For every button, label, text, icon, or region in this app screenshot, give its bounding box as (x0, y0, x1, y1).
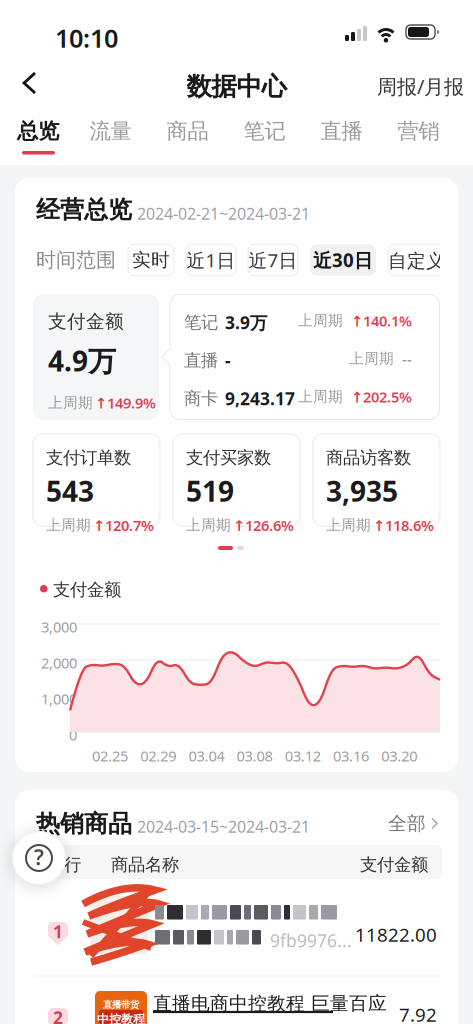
staticText: ↑140.1% (351, 311, 412, 330)
staticText: 上周期 (186, 516, 231, 534)
staticText: - (225, 349, 231, 372)
staticText: 03.08 (237, 746, 273, 765)
staticText: 11822.00 (355, 922, 437, 947)
button[interactable]: 支付金额 (33, 294, 159, 420)
staticText: ↑126.6% (233, 515, 294, 535)
staticText: 中控教程 (97, 1012, 145, 1024)
staticText: 03.12 (285, 746, 321, 765)
staticText: 近30日 (313, 248, 373, 272)
button[interactable]: 帮助 (12, 831, 66, 885)
button[interactable]: 全部 (388, 812, 439, 835)
staticText: 支付买家数 (186, 447, 271, 468)
staticText: 笔记 (184, 312, 218, 333)
button[interactable]: 自定义日期 (388, 244, 473, 276)
staticText: 支付金额 (53, 579, 121, 600)
button[interactable]: 总览 (4, 118, 72, 144)
staticText: 1 (53, 920, 63, 943)
staticText: 支付金额 (360, 854, 428, 875)
staticText: 经营总览 (36, 195, 132, 224)
button[interactable]: 支付买家数 (173, 434, 300, 526)
staticText: 上周期 (298, 312, 343, 330)
staticText: 上周期 (349, 350, 394, 368)
button[interactable]: 商品访客数 (313, 434, 440, 526)
staticText: 03.20 (381, 746, 417, 765)
staticText: 0 (69, 725, 77, 744)
staticText: 营销 (397, 118, 439, 144)
button[interactable]: 支付订单数 (33, 434, 160, 526)
staticText: -- (402, 349, 412, 368)
staticText: 02.29 (140, 746, 176, 765)
button[interactable]: 商品 (149, 118, 226, 144)
staticText: 上周期 (46, 516, 91, 534)
staticText: 排行 (47, 854, 81, 875)
staticText: ↑120.7% (93, 515, 154, 535)
staticText: 时间范围 (36, 248, 116, 272)
staticText: 上周期 (298, 388, 343, 406)
staticText: 周报/月报 (377, 73, 464, 100)
staticText: ↑202.5% (351, 387, 412, 406)
staticText: 9,243.17 (225, 387, 295, 410)
button[interactable]: 近30日 (310, 244, 376, 276)
staticText: 全部 (388, 812, 426, 835)
staticText: 1,000 (41, 689, 77, 708)
staticText: 直播 (320, 118, 362, 144)
staticText: 商品访客数 (326, 447, 411, 468)
button[interactable]: 流量 (72, 118, 149, 144)
staticText: 数据中心 (186, 71, 286, 102)
staticText: 自定义日期 (388, 248, 473, 272)
button[interactable]: 2 (15, 977, 458, 1024)
staticText: 实时 (132, 248, 170, 271)
button[interactable]: Back (14, 63, 47, 103)
staticText: 近7日 (248, 248, 297, 272)
staticText: 03.04 (188, 746, 224, 765)
staticText: 直播 (184, 350, 218, 371)
staticText: 流量 (89, 118, 131, 144)
staticText: 商品名称 (111, 854, 179, 875)
staticText: 2,000 (41, 653, 77, 672)
staticText: 笔记 (243, 118, 285, 144)
staticText: 7.92 (399, 1002, 437, 1024)
staticText: 543 (46, 472, 94, 509)
staticText: ? (34, 843, 44, 871)
staticText: 上周期 (326, 516, 371, 534)
staticText: 2024-02-21~2024-03-21 (137, 203, 310, 224)
staticText: 直播带货 (103, 999, 139, 1010)
staticText: 支付订单数 (46, 447, 131, 468)
button[interactable]: 营销 (380, 118, 457, 144)
staticText: 3,000 (41, 617, 77, 636)
staticText: 近1日 (186, 248, 235, 272)
staticText: 02.25 (92, 746, 128, 765)
staticText: 4.9万 (48, 342, 116, 379)
staticText: ↑149.9% (95, 393, 156, 413)
staticText: 519 (186, 472, 234, 509)
staticText: ↑118.6% (373, 515, 434, 535)
staticText: 商品 (166, 118, 208, 144)
staticText: 上周期 (48, 394, 93, 412)
staticText: 热销商品 (36, 809, 132, 838)
button[interactable]: 1 (15, 880, 458, 976)
staticText: 2024-03-15~2024-03-21 (137, 816, 310, 837)
staticText: 3.9万 (225, 311, 267, 334)
button[interactable]: 笔记 (226, 118, 303, 144)
button[interactable]: 近7日 (248, 244, 298, 276)
staticText: 10:10 (55, 21, 118, 55)
staticText: 商卡 (184, 388, 218, 409)
staticText: 总览 (17, 118, 59, 144)
staticText: 3,935 (326, 472, 398, 509)
button[interactable]: 实时 (128, 244, 174, 276)
button[interactable]: 近1日 (186, 244, 236, 276)
staticText: 03.16 (333, 746, 369, 765)
button[interactable]: 周报/月报 (377, 73, 464, 100)
staticText: 支付金额 (48, 310, 124, 333)
staticText: 2 (53, 1006, 63, 1024)
staticText: 9fb9976... (270, 929, 352, 952)
staticText: 直播电商中控教程 巨量百应 (153, 992, 387, 1015)
button[interactable]: 直播 (303, 118, 380, 144)
